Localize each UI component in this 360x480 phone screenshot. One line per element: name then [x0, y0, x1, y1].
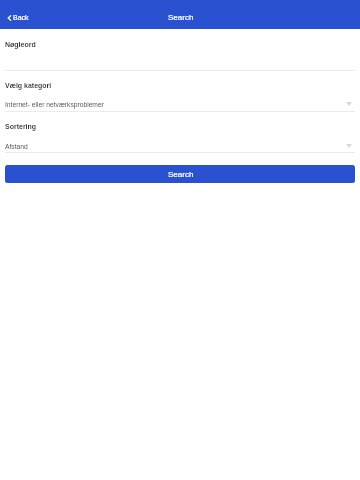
- other: Back: [7, 15, 11, 21]
- button[interactable]: Search: [5, 165, 355, 183]
- staticText: Vælg kategori: [5, 82, 52, 90]
- button[interactable]: Afstand: [0, 141, 360, 153]
- button[interactable]: Nøgleord input: [0, 58, 360, 71]
- staticText: Search: [168, 170, 194, 179]
- staticText: Search: [168, 13, 194, 22]
- staticText: Back: [13, 14, 29, 22]
- staticText: Afstand: [5, 143, 28, 150]
- staticText: Sortering: [5, 123, 37, 131]
- staticText: Internet- eller netværksproblemer: [5, 101, 104, 108]
- staticText: Nøgleord: [5, 41, 36, 49]
- button[interactable]: Back: [3, 7, 35, 28]
- button[interactable]: Internet- eller netværksproblemer: [0, 99, 360, 111]
